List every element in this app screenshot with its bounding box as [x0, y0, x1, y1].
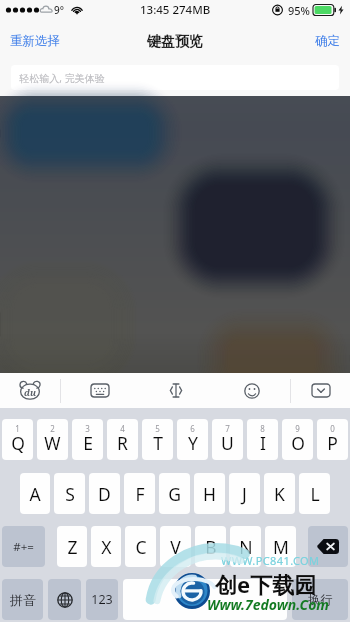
staticText: R — [117, 431, 128, 455]
staticText: #+= — [13, 539, 34, 555]
button[interactable]: H — [194, 473, 225, 514]
staticText: 123 — [91, 591, 113, 608]
staticText: 换行 — [308, 592, 333, 608]
staticText: 9 — [295, 423, 300, 434]
button[interactable]: Baidu input method — [0, 373, 60, 408]
staticText: Www.7edown.Com — [207, 595, 330, 614]
staticText: 5 — [155, 423, 160, 434]
button[interactable]: X — [91, 526, 121, 567]
staticText: H — [203, 482, 216, 506]
staticText: WWW.PC841.COM — [221, 553, 320, 568]
staticText: J — [242, 482, 247, 506]
staticText: 轻松输入, 完美体验 — [19, 71, 105, 85]
button[interactable]: Space — [123, 579, 287, 620]
button[interactable]: 6 — [177, 419, 208, 460]
button[interactable]: B — [195, 526, 226, 567]
staticText: 创e下载园 — [215, 569, 317, 599]
button[interactable]: 4 — [107, 419, 138, 460]
button[interactable]: 7 — [212, 419, 243, 460]
staticText: 拼音 — [10, 592, 36, 608]
button[interactable]: G — [159, 473, 190, 514]
staticText: 7 — [225, 423, 230, 434]
button[interactable]: V — [160, 526, 191, 567]
button[interactable]: M — [265, 526, 296, 567]
button[interactable]: Z — [57, 526, 87, 567]
button[interactable]: 123 — [86, 579, 118, 620]
staticText: U — [221, 431, 234, 455]
staticText: M — [273, 535, 289, 559]
staticText: 键盘预览 — [147, 33, 203, 51]
staticText: 1 — [15, 423, 20, 434]
button[interactable]: J — [229, 473, 260, 514]
staticText: F — [135, 482, 145, 506]
staticText: Z — [67, 535, 78, 559]
button[interactable]: S — [54, 473, 85, 514]
staticText: D — [98, 482, 111, 506]
staticText: L — [310, 482, 320, 506]
staticText: B — [205, 535, 217, 559]
button[interactable]: 1 — [2, 419, 33, 460]
staticText: W — [44, 431, 61, 455]
button[interactable]: 2 — [37, 419, 68, 460]
staticText: X — [101, 535, 112, 559]
button[interactable]: #+= — [2, 526, 45, 567]
button[interactable]: 换行 — [292, 579, 348, 620]
staticText: 3 — [85, 423, 90, 434]
staticText: 95% — [288, 3, 310, 18]
staticText: 6 — [190, 423, 195, 434]
staticText: E — [83, 431, 93, 455]
button[interactable]: 8 — [247, 419, 278, 460]
button[interactable]: D — [89, 473, 120, 514]
button[interactable]: N — [230, 526, 261, 567]
staticText: N — [239, 535, 253, 559]
button[interactable]: A — [20, 473, 50, 514]
staticText: K — [274, 482, 285, 506]
button[interactable]: 0 — [317, 419, 348, 460]
staticText: S — [65, 482, 75, 506]
button[interactable]: 轻松输入, 完美体验 — [11, 65, 339, 90]
button[interactable]: C — [125, 526, 156, 567]
staticText: 4 — [120, 423, 125, 434]
staticText: Y — [188, 431, 198, 455]
staticText: V — [170, 535, 181, 559]
staticText: 确定 — [315, 33, 340, 49]
button[interactable]: 确定 — [305, 25, 350, 57]
button[interactable]: Cursor — [138, 373, 214, 408]
staticText: C — [135, 535, 147, 559]
button[interactable]: 3 — [72, 419, 103, 460]
button[interactable]: K — [264, 473, 295, 514]
button[interactable]: Emoji — [214, 373, 290, 408]
button[interactable]: F — [124, 473, 155, 514]
staticText: 2 — [50, 423, 55, 434]
button[interactable]: 重新选择 — [0, 25, 70, 57]
staticText: 重新选择 — [10, 33, 60, 49]
button[interactable]: Keyboard — [61, 373, 138, 408]
button[interactable]: L — [299, 473, 330, 514]
staticText: 13:45 274MB — [140, 2, 211, 18]
staticText: Q — [11, 431, 25, 455]
staticText: A — [29, 482, 41, 506]
button[interactable]: Change language — [48, 579, 81, 620]
staticText: I — [260, 431, 266, 455]
staticText: 9° — [54, 3, 64, 17]
staticText: 8 — [260, 423, 265, 434]
staticText: 0 — [330, 423, 335, 434]
staticText: G — [168, 482, 181, 506]
staticText: O — [291, 431, 305, 455]
button[interactable]: 拼音 — [2, 579, 43, 620]
staticText: du — [24, 386, 37, 398]
button[interactable]: 5 — [142, 419, 173, 460]
staticText: P — [327, 431, 338, 455]
staticText: T — [153, 431, 163, 455]
button[interactable]: Hide keyboard — [291, 373, 350, 408]
button[interactable]: 9 — [282, 419, 313, 460]
button[interactable]: Backspace — [308, 526, 348, 567]
